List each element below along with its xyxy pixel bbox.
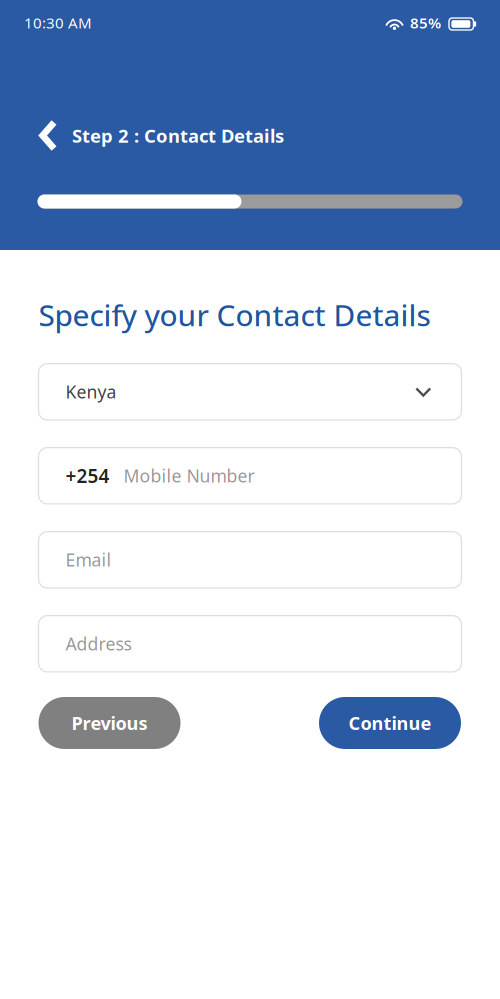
staticText: Email — [65, 548, 111, 572]
button[interactable]: Email — [38, 532, 461, 588]
button[interactable]: +254 — [38, 448, 461, 504]
staticText: Previous — [71, 711, 147, 735]
staticText: Specify your Contact Details — [38, 294, 430, 335]
staticText: Address — [65, 632, 131, 656]
staticText: 85% — [410, 12, 441, 33]
staticText: 10:30 AM — [24, 12, 92, 33]
staticText: +254 — [65, 463, 109, 489]
staticText: Step 2 : Contact Details — [72, 123, 284, 148]
button[interactable]: Previous — [38, 697, 180, 749]
button[interactable]: Address — [38, 616, 461, 672]
button[interactable]: Kenya — [38, 364, 461, 420]
staticText: Mobile Number — [123, 464, 254, 488]
button[interactable]: Continue — [319, 697, 461, 749]
staticText: Kenya — [65, 380, 116, 404]
button[interactable]: Step 2 : Contact Details — [39, 118, 339, 152]
staticText: Continue — [348, 711, 431, 735]
